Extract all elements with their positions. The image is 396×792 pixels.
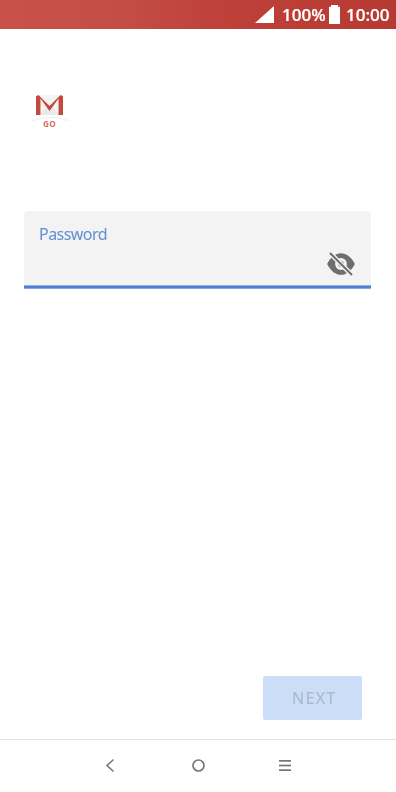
button[interactable]: NEXT (263, 676, 362, 720)
button[interactable]: Toggle password visibility (327, 252, 355, 276)
staticText: 100% (282, 3, 326, 26)
staticText: Password (39, 223, 107, 245)
staticText: NEXT (292, 687, 337, 709)
button[interactable]: Back (88, 743, 132, 787)
staticText: GO (43, 118, 57, 129)
staticText: 10:00 (346, 3, 390, 26)
button[interactable]: Recent apps (263, 743, 307, 787)
button[interactable]: Home (176, 743, 220, 787)
button[interactable]: Password (24, 211, 371, 285)
